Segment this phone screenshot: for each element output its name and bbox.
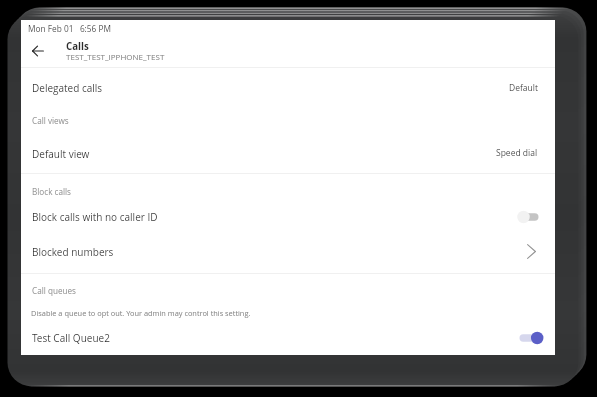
staticText: Blocked numbers	[32, 245, 114, 259]
button[interactable]: Blocked numbers	[21, 235, 555, 270]
button[interactable]: Block calls with no caller ID, off	[21, 199, 555, 235]
button[interactable]: Test Call Queue2, on	[21, 322, 555, 355]
staticText: Disable a queue to opt out. Your admin m…	[31, 308, 251, 318]
staticText: Block calls	[32, 186, 71, 197]
button[interactable]: Back	[26, 38, 50, 63]
staticText: Test Call Queue2	[32, 331, 110, 345]
staticText: Mon Feb 01 6:56 PM	[28, 23, 111, 34]
staticText: Speed dial	[496, 147, 538, 159]
button[interactable]: Default view	[21, 133, 555, 173]
button[interactable]: Delegated calls	[21, 68, 555, 107]
staticText: Default view	[32, 147, 90, 161]
staticText: Call queues	[32, 285, 76, 296]
staticText: Default	[509, 82, 538, 94]
staticText: Delegated calls	[32, 81, 103, 95]
staticText: Call views	[32, 115, 69, 126]
staticText: Block calls with no caller ID	[32, 210, 158, 224]
staticText: TEST_TEST_IPPHONE_TEST	[66, 51, 165, 62]
staticText: Calls	[66, 40, 89, 53]
